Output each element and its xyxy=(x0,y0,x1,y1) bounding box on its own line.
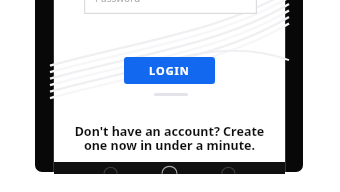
button[interactable]: Don't have an account? Create one now in… xyxy=(54,123,285,153)
staticText: LOGIN xyxy=(149,63,190,78)
button[interactable]: Password xyxy=(84,0,257,14)
other: Navigation bar xyxy=(54,162,285,174)
staticText: Password xyxy=(95,0,141,5)
button[interactable]: LOGIN xyxy=(124,57,215,84)
